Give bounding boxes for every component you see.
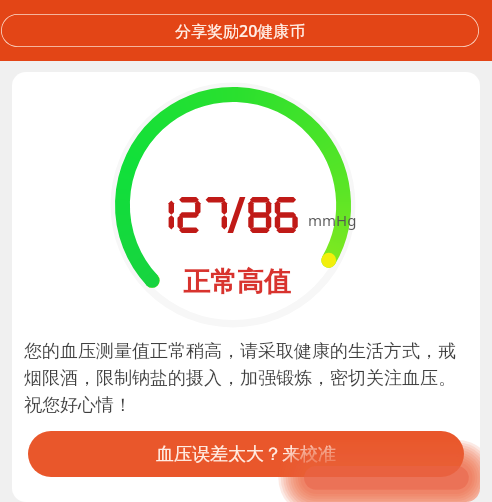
staticText: 分享奖励20健康币 bbox=[175, 20, 306, 42]
button[interactable]: 血压误差太大？来校准 bbox=[28, 431, 464, 477]
button[interactable]: 返回 bbox=[14, 12, 176, 50]
staticText: mmHg bbox=[308, 210, 357, 230]
staticText: 正常高值 bbox=[183, 265, 291, 299]
button[interactable]: 分享奖励20健康币 bbox=[0, 13, 480, 48]
staticText: 您的血压测量值正常稍高，请采取健康的生活方式，戒烟限酒，限制钠盐的摄入，加强锻炼… bbox=[24, 340, 470, 417]
staticText: 血压误差太大？来校准 bbox=[156, 443, 336, 466]
